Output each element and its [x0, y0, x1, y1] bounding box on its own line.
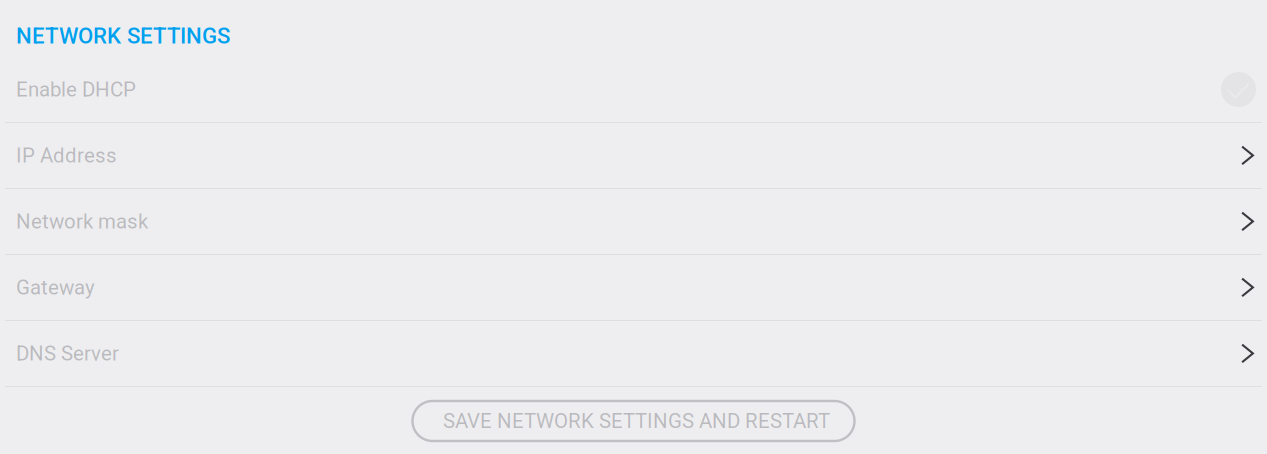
button[interactable]: Enable DHCP — [0, 57, 1267, 123]
button[interactable]: Network mask — [0, 189, 1267, 255]
staticText: Network mask — [16, 209, 148, 233]
staticText: IP Address — [16, 143, 117, 167]
staticText: NETWORK SETTINGS — [16, 23, 230, 49]
staticText: Enable DHCP — [16, 77, 136, 101]
button[interactable]: DNS Server — [0, 321, 1267, 387]
button[interactable]: Gateway — [0, 255, 1267, 321]
button[interactable]: IP Address — [0, 123, 1267, 189]
button[interactable]: SAVE NETWORK SETTINGS AND RESTART — [412, 401, 854, 441]
staticText: DNS Server — [16, 341, 119, 365]
staticText: Gateway — [16, 275, 95, 299]
staticText: SAVE NETWORK SETTINGS AND RESTART — [443, 409, 830, 433]
